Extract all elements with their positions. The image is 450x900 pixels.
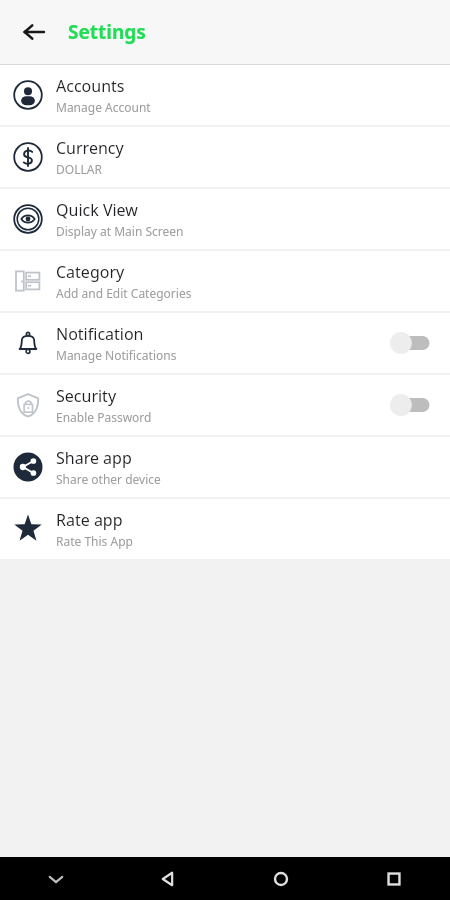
staticText: Category (56, 261, 125, 283)
button[interactable]: Currency (0, 127, 450, 187)
button[interactable]: Toggle Security (390, 392, 432, 418)
staticText: Share other device (56, 471, 161, 487)
button[interactable]: Toggle Notification (390, 330, 432, 356)
button[interactable]: Home (224, 857, 337, 900)
staticText: Display at Main Screen (56, 223, 184, 239)
staticText: Add and Edit Categories (56, 285, 192, 301)
staticText: DOLLAR (56, 161, 102, 177)
staticText: Rate app (56, 509, 123, 531)
staticText: Settings (68, 19, 146, 45)
staticText: Rate This App (56, 533, 133, 549)
staticText: Security (56, 385, 117, 407)
button[interactable]: Recents (337, 857, 450, 900)
staticText: Enable Password (56, 409, 152, 425)
staticText: Currency (56, 137, 124, 159)
staticText: Quick View (56, 199, 138, 221)
button[interactable]: Category (0, 251, 450, 311)
staticText: Share app (56, 447, 132, 469)
button[interactable]: Back (112, 857, 224, 900)
staticText: Manage Account (56, 99, 151, 115)
staticText: Manage Notifications (56, 347, 177, 363)
button[interactable]: Security (0, 375, 450, 435)
button[interactable]: Rate app (0, 499, 450, 559)
button[interactable]: Hide keyboard (0, 857, 112, 900)
button[interactable]: Accounts (0, 65, 450, 125)
button[interactable]: Share app (0, 437, 450, 497)
button[interactable]: Back (14, 12, 54, 52)
button[interactable]: Quick View (0, 189, 450, 249)
staticText: Accounts (56, 75, 125, 97)
button[interactable]: Notification (0, 313, 450, 373)
staticText: Notification (56, 323, 144, 345)
